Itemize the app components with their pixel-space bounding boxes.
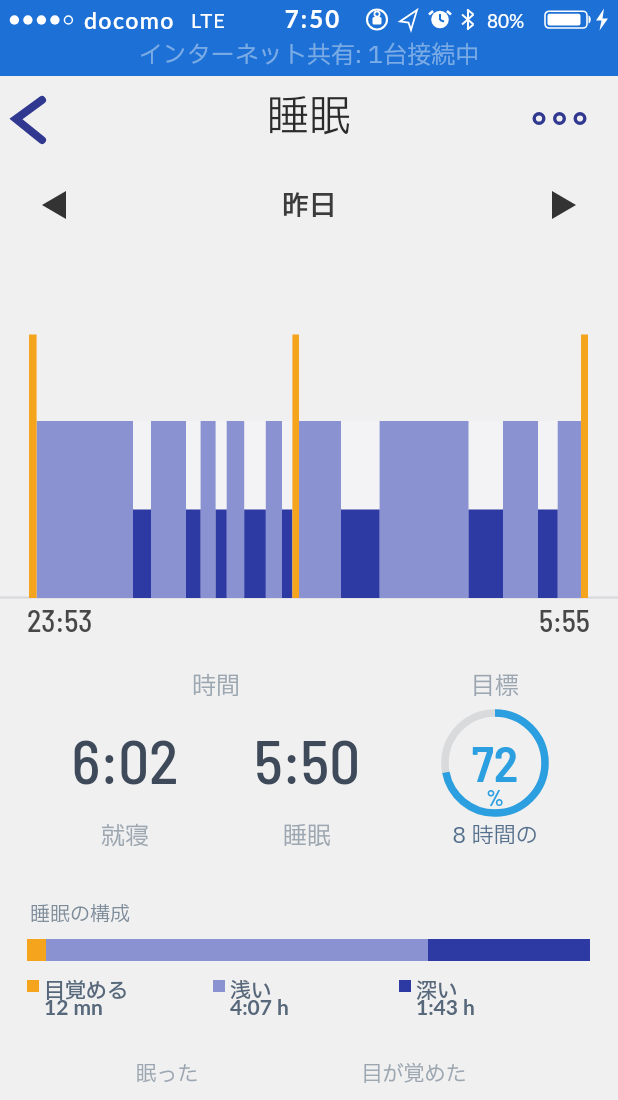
staticText: 睡眠 <box>267 819 347 855</box>
staticText: 睡眠 <box>0 86 618 149</box>
staticText: 目覚める <box>44 976 128 1007</box>
button[interactable]: 昨日 <box>269 186 349 226</box>
staticText: 7:50 <box>4 4 618 33</box>
staticText: 12 mn <box>44 994 103 1019</box>
staticText: 5:55 <box>490 602 590 638</box>
staticText: 目標 <box>455 669 535 705</box>
staticText: 就寝 <box>85 819 165 855</box>
staticText: インターネット共有: 1台接続中 <box>0 38 618 74</box>
staticText: 80% <box>487 9 525 32</box>
staticText: docomo <box>84 6 175 34</box>
staticText: 浅い <box>230 976 272 1007</box>
button[interactable] <box>528 178 588 233</box>
staticText: 深い <box>416 976 458 1007</box>
button[interactable] <box>522 94 598 144</box>
staticText: 72 <box>445 732 545 792</box>
staticText: 時間 <box>176 669 256 705</box>
staticText: 4:07 h <box>230 994 289 1019</box>
staticText: LTE <box>191 8 226 32</box>
staticText: 睡眠の構成 <box>30 900 130 930</box>
staticText: 眠った <box>127 1059 207 1090</box>
staticText: 目が覚めた <box>354 1059 474 1090</box>
staticText: 6:02 <box>45 723 205 796</box>
button[interactable] <box>4 82 60 152</box>
staticText: 5:50 <box>227 723 387 796</box>
button[interactable] <box>30 178 90 233</box>
staticText: 1:43 h <box>416 994 475 1019</box>
staticText: 8 時間の <box>445 820 545 853</box>
staticText: % <box>445 784 545 810</box>
staticText: 23:53 <box>27 602 93 638</box>
